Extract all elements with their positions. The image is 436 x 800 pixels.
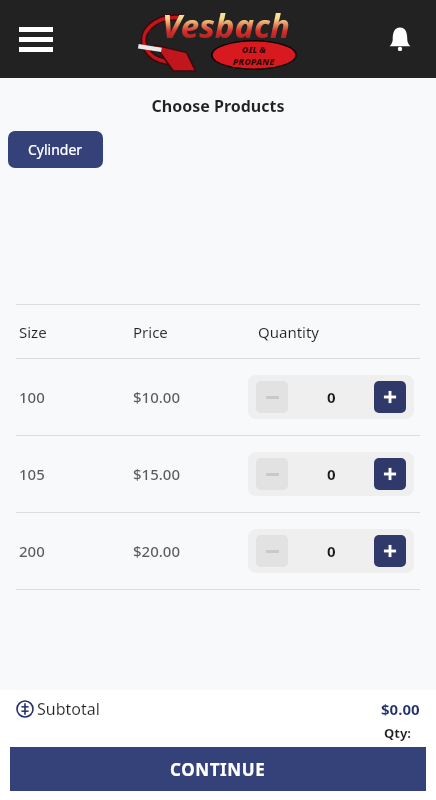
button[interactable]: Cylinder [8,131,103,168]
button[interactable]: Increase quantity [374,535,406,567]
staticText: 105 [19,464,133,484]
staticText: Qty: [384,724,412,742]
staticText: $15.00 [133,464,248,484]
button[interactable]: Notifications [378,17,422,61]
staticText: Cylinder [28,140,83,159]
staticText: PROPANE [233,55,275,67]
button[interactable]: Decrease quantity [256,535,288,567]
staticText: Subtotal [37,698,100,720]
staticText: 0 [327,541,336,561]
staticText: OIL & [242,43,267,55]
button[interactable]: CONTINUE [10,747,426,791]
button[interactable]: Menu [14,17,58,61]
staticText: 200 [19,541,133,561]
staticText: 100 [19,387,133,407]
staticText: 0 [327,464,336,484]
staticText: 0 [327,387,336,407]
staticText: $0.00 [381,699,420,719]
staticText: $10.00 [133,387,248,407]
staticText: $20.00 [133,541,248,561]
staticText: Quantity [258,322,320,342]
staticText: CONTINUE [170,758,266,781]
staticText: Vesbach [162,3,290,48]
button[interactable]: Decrease quantity [256,381,288,413]
staticText: Size [19,322,133,342]
button[interactable]: Increase quantity [374,458,406,490]
button[interactable]: Decrease quantity [256,458,288,490]
staticText: Price [133,322,258,342]
staticText: Choose Products [0,95,436,117]
button[interactable]: Increase quantity [374,381,406,413]
